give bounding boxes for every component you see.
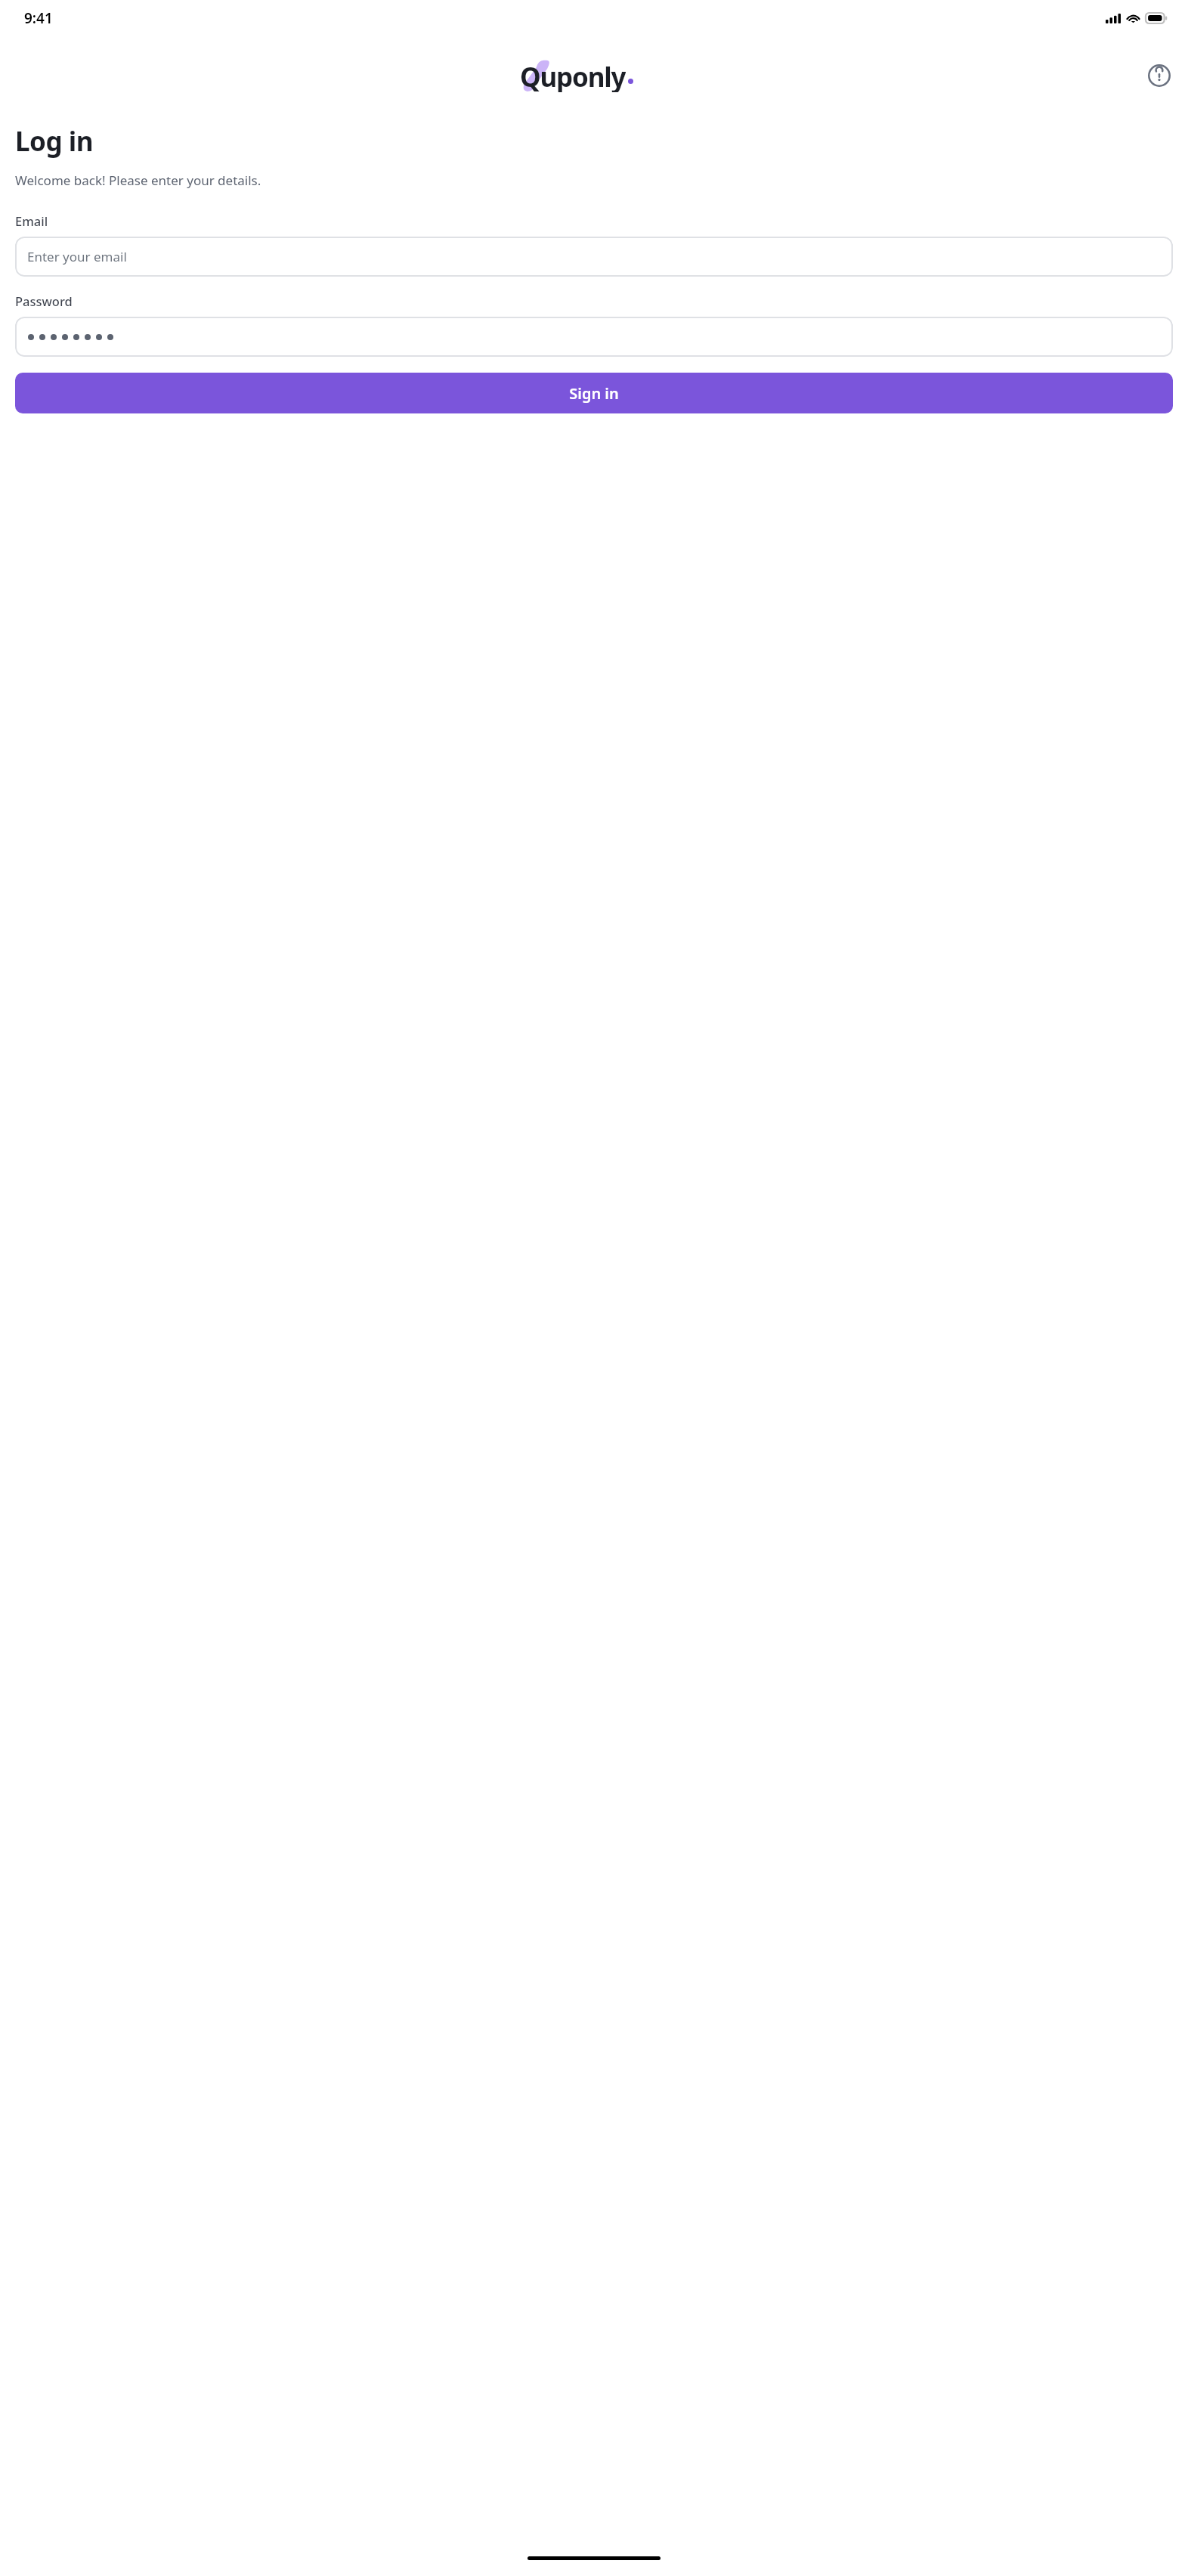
staticText: Sign in xyxy=(569,383,619,404)
staticText: Password xyxy=(15,293,73,309)
staticText: Log in xyxy=(15,123,93,159)
button[interactable]: Help xyxy=(1144,60,1174,91)
staticText: 9:41 xyxy=(24,8,53,28)
button[interactable]: Sign in xyxy=(15,373,1173,413)
staticText: Enter your email xyxy=(27,248,127,265)
staticText: Welcome back! Please enter your details. xyxy=(15,172,261,189)
staticText: Quponly xyxy=(520,59,626,92)
staticText: Email xyxy=(15,212,48,229)
button[interactable] xyxy=(15,317,1173,357)
button[interactable]: Enter your email xyxy=(15,237,1173,277)
